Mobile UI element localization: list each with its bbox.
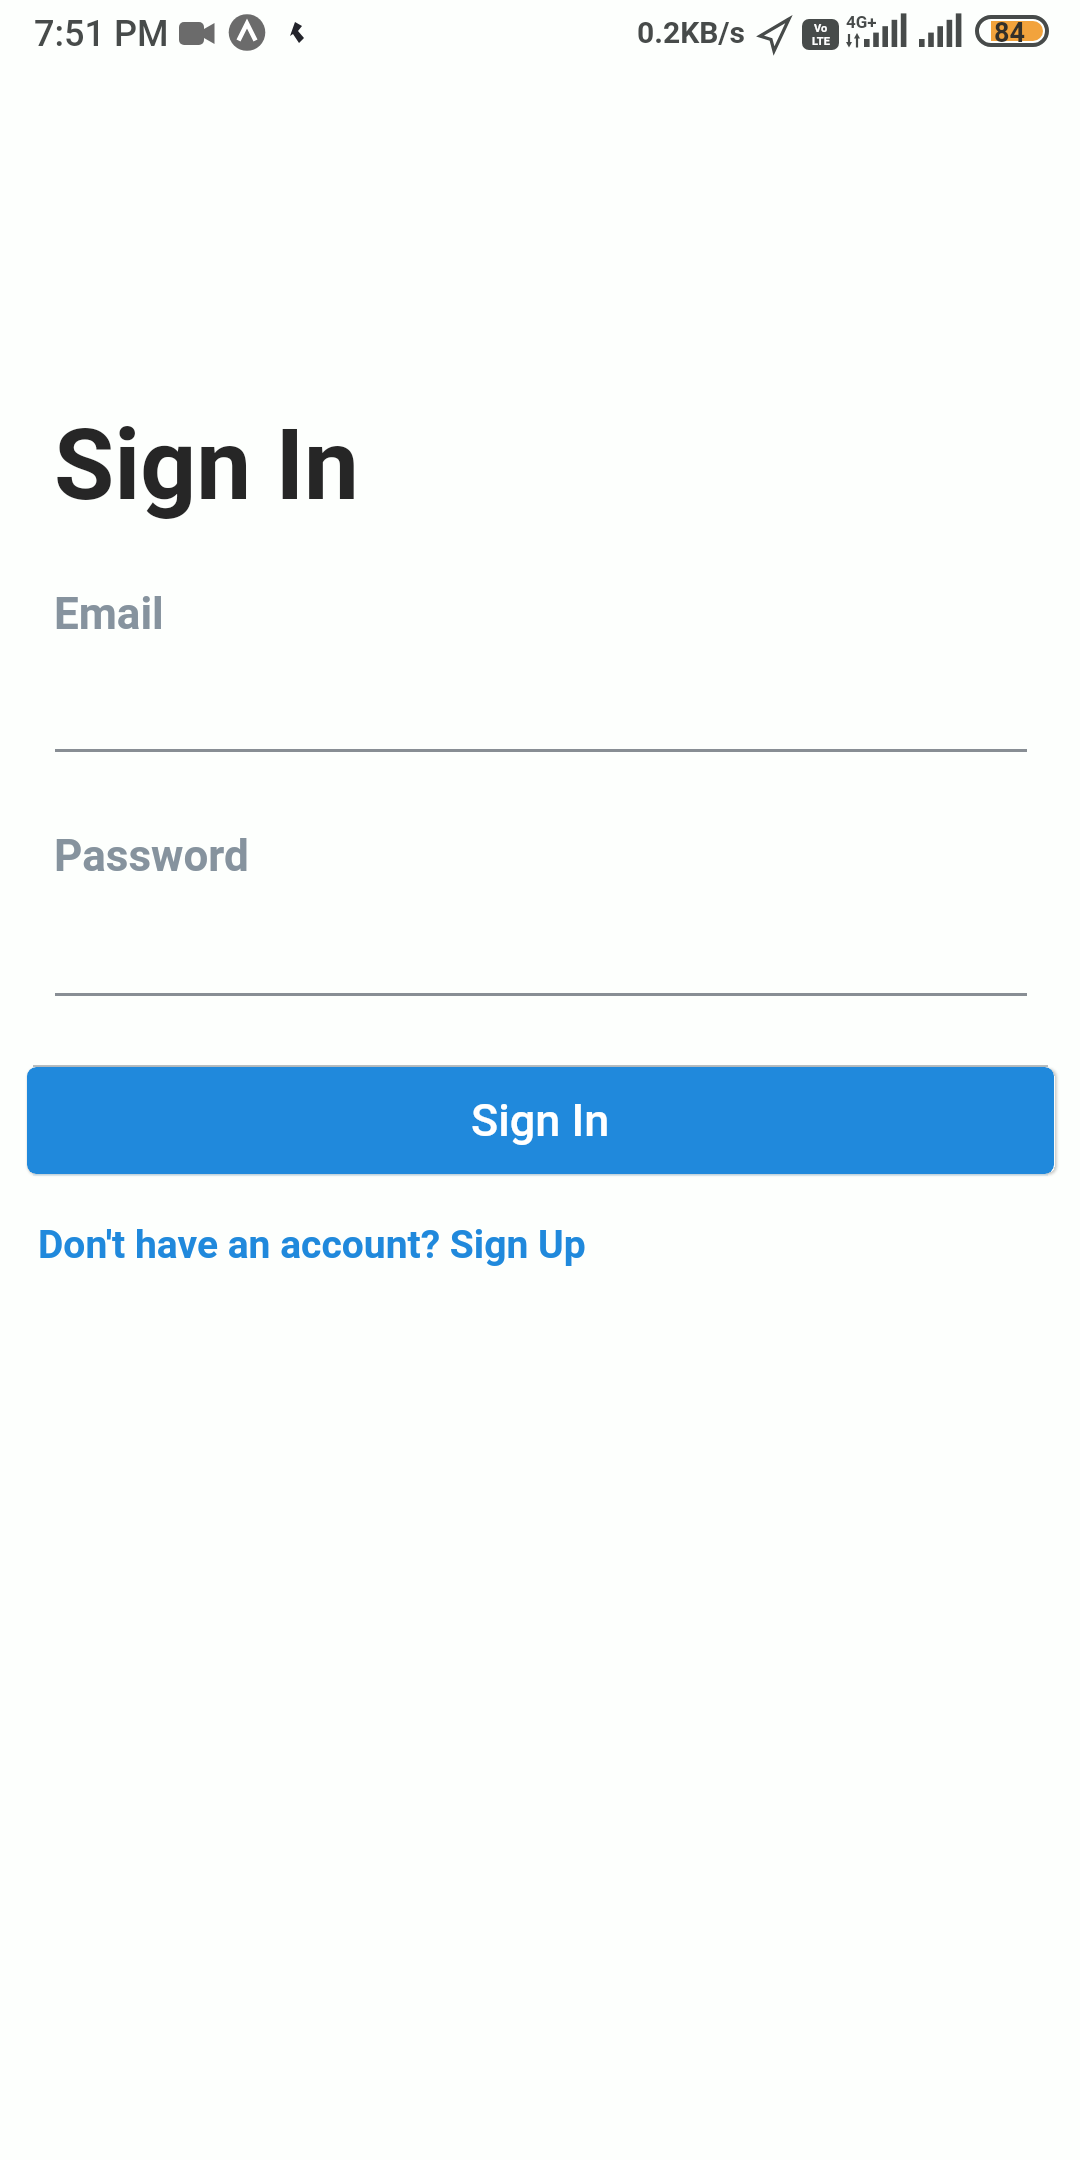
button[interactable]: Email bbox=[27, 570, 1053, 752]
staticText: 0.2KB/s bbox=[637, 15, 746, 50]
staticText: Vo bbox=[814, 22, 828, 35]
staticText: 7:51 PM bbox=[34, 13, 169, 55]
staticText: 84 bbox=[994, 17, 1025, 49]
button[interactable]: Don't have an account? Sign Up bbox=[27, 1210, 597, 1280]
button[interactable]: Sign In bbox=[27, 1067, 1054, 1174]
staticText: Password bbox=[54, 830, 249, 882]
staticText: Sign In bbox=[54, 408, 360, 523]
staticText: LTE bbox=[812, 35, 830, 48]
staticText: Don't have an account? Sign Up bbox=[38, 1222, 586, 1268]
staticText: Sign In bbox=[471, 1094, 610, 1147]
staticText: 4G+ bbox=[846, 12, 877, 32]
button[interactable]: Password bbox=[27, 814, 1053, 996]
staticText: Email bbox=[54, 588, 164, 640]
